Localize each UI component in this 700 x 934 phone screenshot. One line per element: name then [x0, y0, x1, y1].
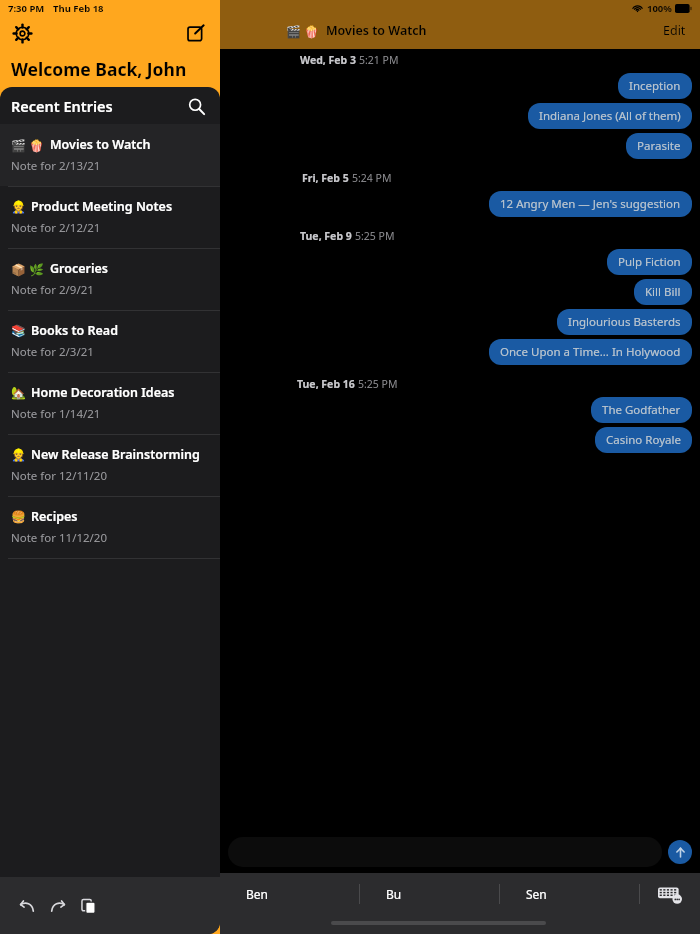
staticText: Recipes: [31, 508, 78, 525]
button[interactable]: The Godfather: [591, 397, 692, 423]
staticText: 5:24 PM: [352, 171, 392, 185]
staticText: Home Decoration Ideas: [31, 384, 175, 401]
staticText: Tue, Feb 16: [297, 377, 355, 391]
staticText: Inglourious Basterds: [568, 314, 681, 330]
staticText: 5:25 PM: [358, 377, 398, 391]
staticText: Movies to Watch: [326, 22, 427, 39]
staticText: 📦 🌿: [11, 261, 45, 277]
button[interactable]: 🏡: [0, 372, 220, 434]
staticText: Pulp Fiction: [618, 254, 681, 270]
staticText: Note for 2/12/21: [11, 220, 101, 236]
staticText: 100%: [647, 2, 672, 15]
staticText: Books to Read: [31, 322, 118, 339]
button[interactable]: Bu: [360, 873, 499, 915]
staticText: Note for 1/14/21: [11, 406, 101, 422]
button[interactable]: 👷: [0, 434, 220, 496]
button[interactable]: 🍔: [0, 496, 220, 558]
staticText: 🍔: [11, 510, 26, 524]
staticText: Kill Bill: [645, 284, 681, 300]
staticText: Inception: [629, 78, 681, 94]
button[interactable]: Sen: [500, 873, 639, 915]
button[interactable]: Once Upon a Time... In Holywood: [489, 339, 692, 365]
button[interactable]: 📚: [0, 310, 220, 372]
staticText: 🎬 🍿: [286, 23, 320, 39]
button[interactable]: 🎬 🍿: [0, 124, 220, 186]
staticText: Note for 11/12/20: [11, 530, 108, 546]
staticText: Product Meeting Notes: [31, 198, 173, 215]
staticText: 12 Angry Men — Jen's suggestion: [500, 196, 681, 212]
staticText: 7:30 PM: [8, 2, 45, 15]
button[interactable]: Send: [668, 840, 692, 864]
staticText: 👷: [11, 448, 26, 462]
staticText: Thu Feb 18: [53, 2, 104, 15]
button[interactable]: Ben: [220, 873, 359, 915]
staticText: 5:21 PM: [359, 53, 399, 67]
button[interactable]: Redo: [45, 893, 71, 919]
staticText: Bu: [386, 886, 402, 902]
staticText: 5:25 PM: [355, 229, 395, 243]
button[interactable]: Edit: [659, 18, 690, 43]
staticText: Once Upon a Time... In Holywood: [500, 344, 681, 360]
staticText: The Godfather: [602, 402, 681, 418]
staticText: Note for 2/3/21: [11, 344, 94, 360]
staticText: 🏡: [11, 386, 26, 400]
staticText: Ben: [246, 886, 268, 902]
button[interactable]: Undo: [14, 893, 40, 919]
staticText: Movies to Watch: [50, 136, 151, 153]
button[interactable]: Casino Royale: [595, 427, 692, 453]
button[interactable]: Pulp Fiction: [607, 249, 692, 275]
button[interactable]: Kill Bill: [634, 279, 692, 305]
button[interactable]: Indiana Jones (All of them): [528, 103, 692, 129]
staticText: Note for 2/9/21: [11, 282, 94, 298]
button[interactable]: 👷: [0, 186, 220, 248]
staticText: Parasite: [637, 138, 681, 154]
staticText: Wed, Feb 3: [300, 53, 356, 67]
button[interactable]: Settings: [9, 20, 35, 46]
button[interactable]: Compose: [182, 20, 208, 46]
button[interactable]: Search: [184, 94, 208, 118]
staticText: New Release Brainstorming: [31, 446, 200, 463]
staticText: Groceries: [50, 260, 108, 277]
button[interactable]: Inglourious Basterds: [557, 309, 692, 335]
button[interactable]: Hide keyboard: [640, 873, 700, 915]
button[interactable]: Paste: [76, 893, 102, 919]
staticText: Tue, Feb 9: [300, 229, 352, 243]
staticText: Indiana Jones (All of them): [539, 108, 681, 124]
button[interactable]: 📦 🌿: [0, 248, 220, 310]
staticText: 📚: [11, 324, 26, 338]
staticText: Recent Entries: [11, 96, 113, 116]
staticText: Welcome Back, John: [11, 57, 187, 81]
staticText: Fri, Feb 5: [302, 171, 349, 185]
staticText: Note for 2/13/21: [11, 158, 101, 174]
button[interactable]: Inception: [618, 73, 692, 99]
staticText: 🎬 🍿: [11, 137, 45, 153]
staticText: Note for 12/11/20: [11, 468, 108, 484]
button[interactable]: Parasite: [626, 133, 692, 159]
button[interactable]: 12 Angry Men — Jen's suggestion: [489, 191, 692, 217]
staticText: 👷: [11, 200, 26, 214]
staticText: Sen: [526, 886, 547, 902]
staticText: Casino Royale: [606, 432, 681, 448]
staticText: Edit: [663, 22, 686, 39]
